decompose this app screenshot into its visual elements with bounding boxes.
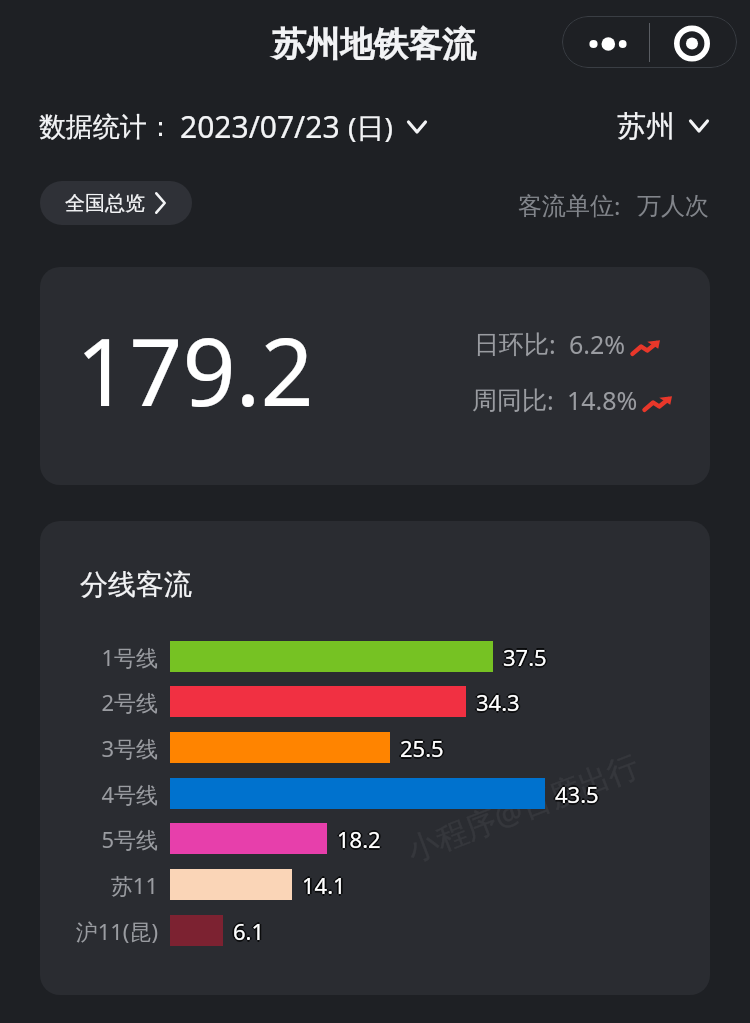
button[interactable]: Close mini program [650,16,737,68]
staticText: 1号线 [40,642,158,672]
staticText: 沪11(昆) [40,916,158,946]
button[interactable]: 全国总览 [40,181,192,225]
staticText: 18.2 [339,824,383,854]
button[interactable]: More options [562,16,649,68]
staticText: 43.5 [555,777,599,807]
staticText: 34.3 [476,685,520,715]
staticText: 25.5 [400,733,444,763]
staticText: 25.5 [402,733,446,763]
staticText: : [549,327,556,361]
staticText: 14.1 [302,872,346,902]
staticText: 14.1 [300,870,344,900]
staticText: 37.5 [505,642,549,672]
staticText: 6.2% [569,327,626,361]
staticText: 43.5 [555,781,599,811]
staticText: 34.3 [474,687,518,717]
staticText: 全国总览 [65,191,145,216]
staticText: 34.3 [478,687,522,717]
staticText: 43.5 [555,779,599,809]
staticText: 苏11 [40,870,158,900]
staticText: 小程序@百度出行 [401,743,644,870]
staticText: 2023/07/23 [180,106,340,147]
staticText: 4号线 [40,779,158,809]
staticText: 37.5 [503,640,547,670]
staticText: 18.2 [337,826,381,856]
staticText: 14.1 [302,870,346,900]
staticText: 25.5 [400,735,444,765]
staticText: 日环比 [474,329,549,360]
staticText: 6.1 [231,916,263,946]
staticText: 18.2 [337,824,381,854]
staticText: 数据统计 [39,110,147,144]
staticText: 客流单位 [518,191,614,221]
staticText: 37.5 [503,644,547,674]
staticText: 苏州 [617,108,675,145]
staticText: 14.8% [567,383,638,417]
staticText: 34.3 [476,687,520,717]
staticText: 18.2 [337,822,381,852]
staticText: 万人次 [637,191,709,221]
staticText: 43.5 [557,779,601,809]
button[interactable]: 苏州 [617,106,709,146]
button[interactable]: 数据统计 [39,106,427,147]
staticText: 14.1 [304,870,348,900]
staticText: 43.5 [553,779,597,809]
staticText: 18.2 [335,824,379,854]
staticText: : [547,383,554,417]
staticText: 37.5 [501,642,545,672]
staticText: 6.1 [235,916,267,946]
staticText: 6.1 [233,918,265,948]
staticText: 6.1 [233,914,265,944]
staticText: ： [147,110,174,144]
staticText: 25.5 [398,733,442,763]
staticText: 37.5 [503,642,547,672]
staticText: 34.3 [476,689,520,719]
staticText: 苏州地铁客流 [272,23,476,66]
staticText: 周同比 [472,385,547,416]
staticText: 2号线 [40,687,158,717]
staticText: (日) [348,108,393,146]
staticText: 5号线 [40,824,158,854]
staticText: 25.5 [400,731,444,761]
staticText: 分线客流 [80,567,192,602]
staticText: : [614,189,621,222]
staticText: 179.2 [76,307,314,434]
staticText: 6.1 [233,916,265,946]
staticText: 3号线 [40,733,158,763]
staticText: 14.1 [302,868,346,898]
